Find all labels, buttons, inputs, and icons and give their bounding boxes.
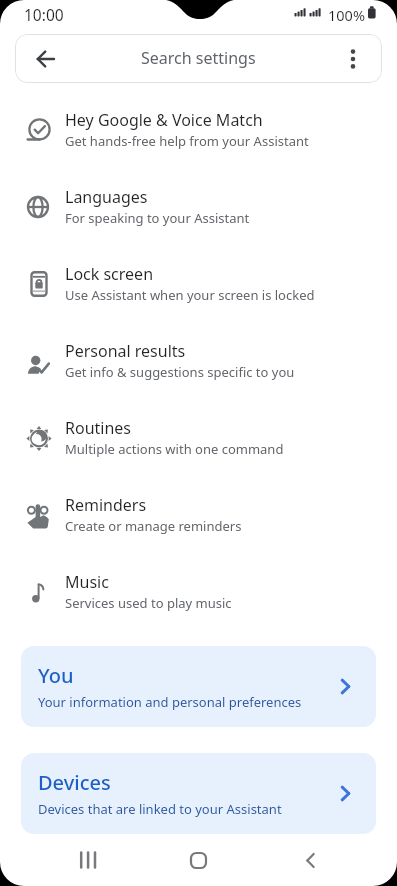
staticText: Routines <box>65 417 132 439</box>
staticText: Languages <box>65 186 148 208</box>
staticText: Search settings <box>141 47 256 69</box>
button[interactable]: Devices <box>21 753 376 834</box>
button[interactable]: Reminders <box>0 476 397 553</box>
staticText: Devices <box>38 769 111 796</box>
button[interactable] <box>168 838 228 882</box>
staticText: Your information and personal preference… <box>38 693 302 711</box>
button[interactable] <box>58 838 118 882</box>
staticText: Get hands-free help from your Assistant <box>65 132 309 150</box>
staticText: Lock screen <box>65 263 154 285</box>
button[interactable]: Search settings <box>15 34 382 83</box>
staticText: Personal results <box>65 340 186 362</box>
button[interactable]: Personal results <box>0 322 397 399</box>
staticText: 10:00 <box>24 4 64 25</box>
staticText: For speaking to your Assistant <box>65 209 250 227</box>
staticText: Multiple actions with one command <box>65 440 284 458</box>
staticText: Use Assistant when your screen is locked <box>65 286 315 304</box>
staticText: Get info & suggestions specific to you <box>65 363 295 381</box>
button[interactable]: Music <box>0 553 397 630</box>
button[interactable]: Lock screen <box>0 245 397 322</box>
staticText: Create or manage reminders <box>65 517 242 535</box>
staticText: 100% <box>328 5 365 25</box>
button[interactable]: Hey Google & Voice Match <box>0 91 397 168</box>
button[interactable]: You <box>21 646 376 727</box>
staticText: Reminders <box>65 494 147 516</box>
staticText: You <box>38 662 74 689</box>
staticText: Devices that are linked to your Assistan… <box>38 800 282 818</box>
staticText: Services used to play music <box>65 594 232 612</box>
button[interactable] <box>280 838 340 882</box>
button[interactable]: Languages <box>0 168 397 245</box>
staticText: Hey Google & Voice Match <box>65 109 263 131</box>
staticText: Music <box>65 571 109 593</box>
button[interactable]: Routines <box>0 399 397 476</box>
